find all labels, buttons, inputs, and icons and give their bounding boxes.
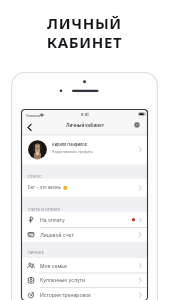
staticText: Личный кабинет (66, 123, 105, 129)
button[interactable] (22, 257, 148, 272)
staticText: Бег – это жизнь (28, 185, 61, 190)
staticText: История тренировок (40, 292, 91, 298)
staticText: Кирилл Панфилов (52, 142, 87, 147)
button[interactable]: Settings (131, 119, 143, 132)
button[interactable]: Back (25, 120, 37, 135)
button[interactable] (22, 135, 148, 164)
staticText: ЛИЧНОЕ (28, 251, 44, 255)
staticText: Оператор (26, 114, 40, 117)
button[interactable] (22, 287, 148, 300)
staticText: Лицевой счет (40, 232, 74, 238)
staticText: На оплату (40, 217, 65, 223)
staticText: СЧЕТА И ОПЛАТА (28, 208, 61, 212)
staticText: СТАТУС (28, 175, 42, 179)
button[interactable] (22, 212, 148, 227)
staticText: Редактировать профиль (52, 150, 93, 154)
button[interactable] (22, 179, 148, 197)
staticText: Моя семья (40, 263, 67, 269)
staticText: Купленные услуги (40, 277, 86, 283)
staticText: 9:41 (81, 112, 89, 117)
staticText: ЛИЧНЫЙ КАБИНЕТ (0, 13, 169, 52)
button[interactable] (22, 272, 148, 287)
button[interactable] (22, 226, 148, 241)
